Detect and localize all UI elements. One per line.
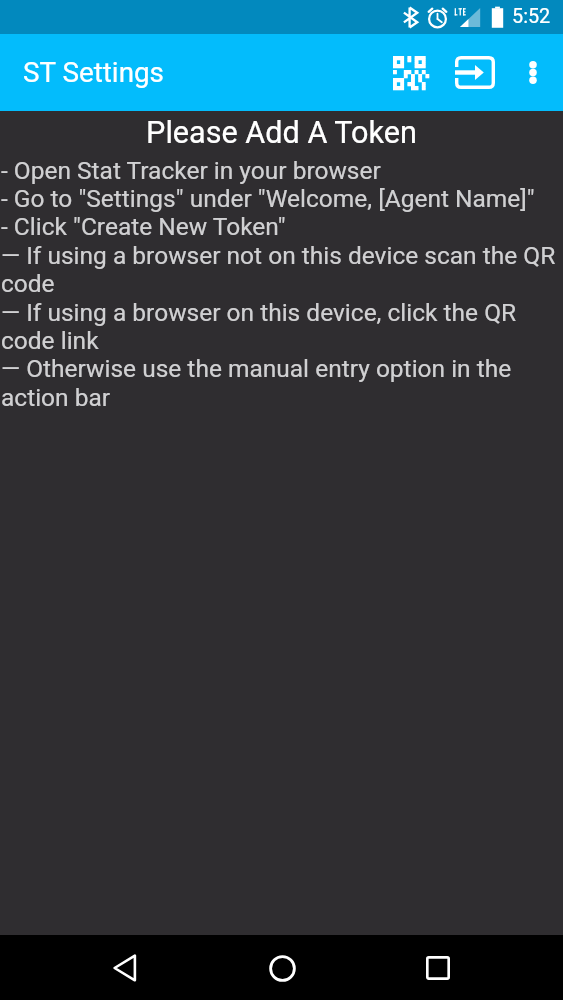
staticText: ST Settings [23, 56, 164, 89]
staticText: — Otherwise use the manual entry option … [1, 354, 512, 383]
staticText: — If using a browser on this device, cli… [1, 298, 517, 327]
staticText: 5:52 [512, 5, 551, 28]
staticText: - Open Stat Tracker in your browser [1, 156, 381, 185]
staticText: code [1, 269, 55, 298]
button[interactable]: Manual token entry [443, 34, 507, 111]
button[interactable]: Home [250, 936, 314, 1000]
staticText: action bar [1, 383, 111, 412]
staticText: Please Add A Token [0, 115, 563, 151]
staticText: - Click "Create New Token" [1, 212, 286, 241]
staticText: code link [1, 326, 99, 355]
staticText: — If using a browser not on this device … [1, 241, 556, 270]
button[interactable]: Back [93, 936, 157, 1000]
button[interactable]: Scan QR code [380, 34, 442, 111]
staticText: - Go to "Settings" under "Welcome, [Agen… [1, 184, 535, 213]
button[interactable]: Recent apps [406, 936, 470, 1000]
button[interactable]: More options [505, 34, 560, 111]
